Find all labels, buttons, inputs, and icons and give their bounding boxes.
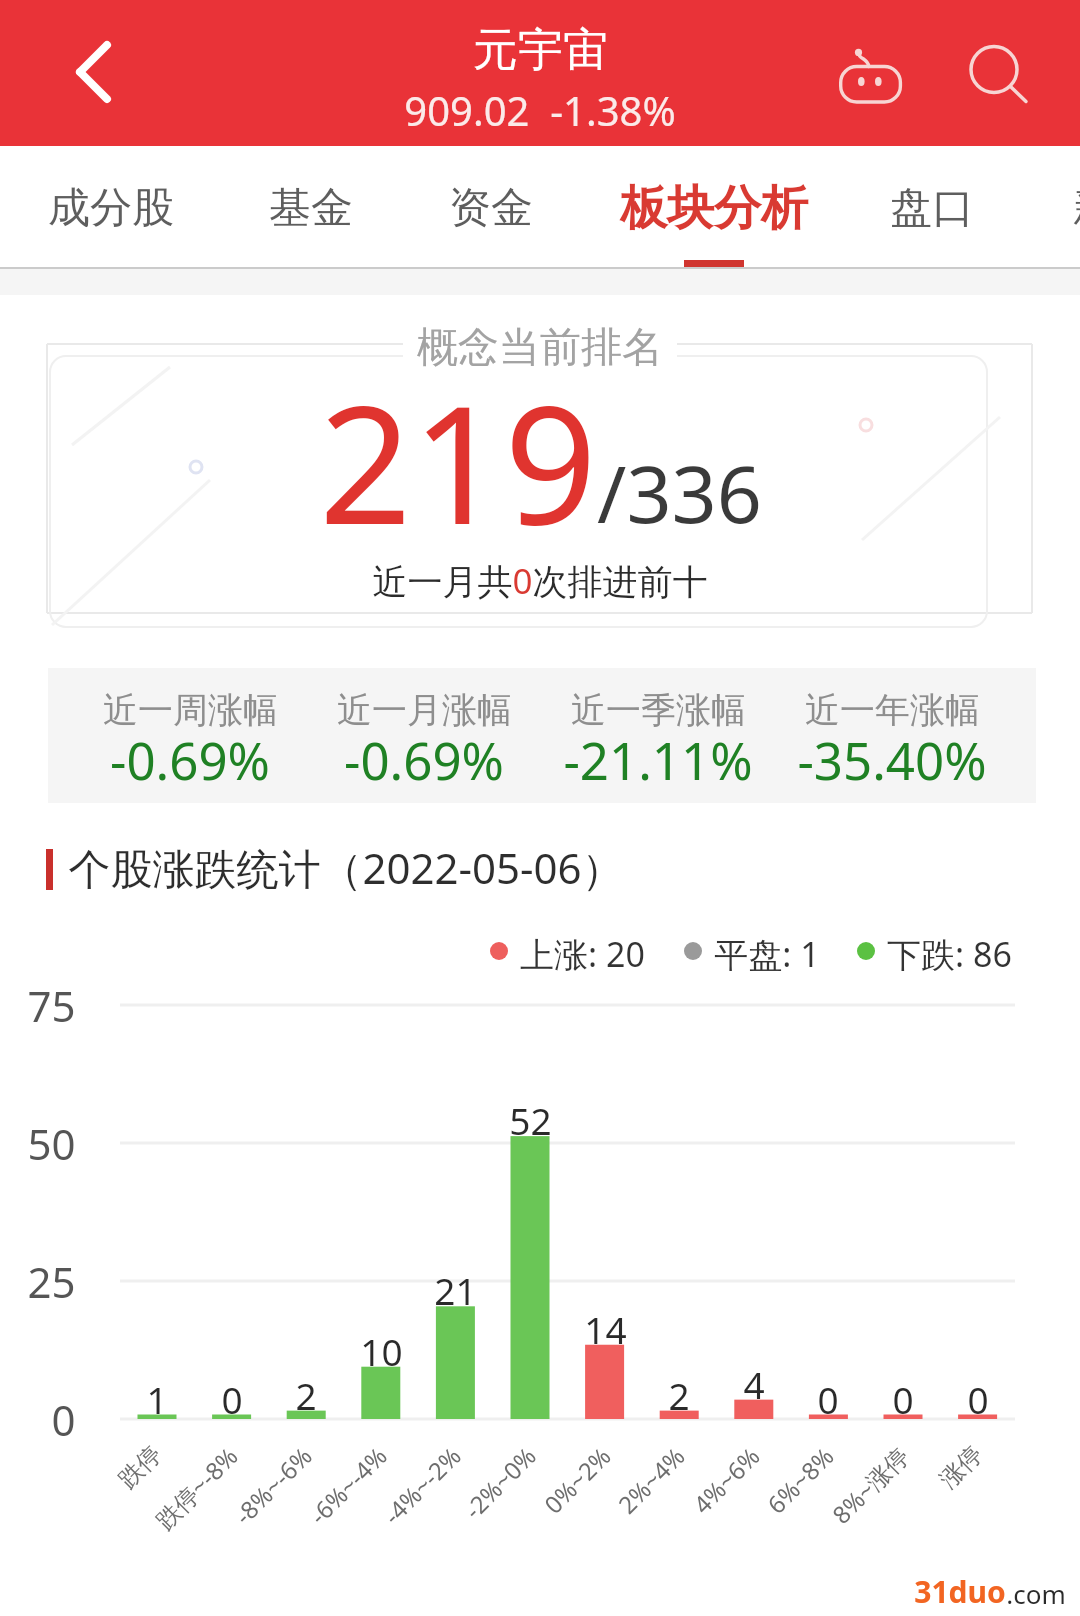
staticText: 31duo	[914, 1571, 1006, 1612]
staticText: 近一月共0次排进前十	[372, 557, 708, 605]
button[interactable]: 上涨: 20	[490, 931, 645, 971]
staticText: 板块分析	[620, 179, 808, 238]
staticText: 近一季涨幅	[571, 688, 746, 732]
staticText: 0	[817, 1374, 839, 1424]
staticText: 跌停	[112, 1439, 168, 1495]
staticText: 盘口	[890, 182, 974, 235]
staticText: 平盘: 1	[714, 931, 820, 971]
staticText: 下跌: 86	[887, 931, 1012, 971]
staticText: 0%~2%	[536, 1439, 616, 1519]
staticText: 2%~4%	[610, 1439, 690, 1519]
button[interactable]: 资金	[421, 150, 561, 267]
button[interactable]: Search	[952, 28, 1036, 112]
staticText: 25	[27, 1253, 76, 1310]
staticText: -8%~-6%	[227, 1439, 317, 1529]
staticText: 概念当前排名	[417, 322, 663, 374]
staticText: 0	[221, 1374, 243, 1424]
staticText: 0	[51, 1391, 76, 1448]
staticText: -0.69%	[344, 725, 504, 794]
staticText: 新	[1073, 182, 1080, 235]
staticText: 近一周涨幅	[103, 688, 278, 732]
staticText: 涨停	[933, 1439, 989, 1495]
staticText: 成分股	[48, 182, 174, 235]
staticText: 4%~6%	[685, 1439, 765, 1519]
staticText: -4%~-2%	[376, 1439, 466, 1529]
button[interactable]: Back	[48, 31, 132, 115]
staticText: 4	[743, 1359, 765, 1409]
staticText: 0	[967, 1374, 989, 1424]
button[interactable]: AI assistant	[828, 31, 912, 115]
staticText: 2	[295, 1370, 317, 1420]
staticText: -21.11%	[563, 725, 753, 794]
staticText: 75	[27, 977, 76, 1034]
staticText: 21	[434, 1265, 477, 1315]
staticText: -6%~-4%	[302, 1439, 392, 1529]
staticText: 2	[668, 1370, 690, 1420]
staticText: 219	[319, 351, 597, 572]
button[interactable]: 近一年涨幅	[762, 668, 1022, 803]
staticText: -35.40%	[797, 725, 987, 794]
button[interactable]: 新	[1054, 150, 1080, 267]
staticText: -0.69%	[110, 725, 270, 794]
staticText: 元宇宙	[473, 22, 608, 79]
staticText: 6%~8%	[759, 1439, 839, 1519]
staticText: 1	[146, 1374, 168, 1424]
staticText: 个股涨跌统计（2022-05-06）	[68, 839, 624, 896]
staticText: 资金	[449, 182, 533, 235]
button[interactable]: 平盘: 1	[684, 931, 820, 971]
staticText: 14	[584, 1304, 627, 1354]
staticText: 跌停~-8%	[148, 1439, 243, 1534]
button[interactable]: 下跌: 86	[857, 931, 1012, 971]
button[interactable]: 近一月涨幅	[294, 668, 554, 803]
button[interactable]: 近一季涨幅	[528, 668, 788, 803]
staticText: 10	[360, 1326, 403, 1376]
staticText: 上涨: 20	[520, 931, 645, 971]
staticText: .com	[1006, 1576, 1066, 1611]
staticText: 0	[892, 1374, 914, 1424]
staticText: 近一月涨幅	[337, 688, 512, 732]
staticText: 基金	[269, 182, 353, 235]
staticText: 909.02 -1.38%	[404, 83, 676, 137]
staticText: 52	[509, 1095, 552, 1145]
button[interactable]: 盘口	[862, 150, 1002, 267]
staticText: 50	[27, 1115, 76, 1172]
button[interactable]: 近一周涨幅	[60, 668, 320, 803]
staticText: 近一年涨幅	[805, 688, 980, 732]
button[interactable]: 基金	[241, 150, 381, 267]
button[interactable]: 板块分析	[599, 150, 829, 267]
staticText: -2%~0%	[456, 1439, 541, 1523]
staticText: /336	[597, 439, 762, 547]
button[interactable]: 成分股	[26, 150, 196, 267]
staticText: 8%~涨停	[824, 1439, 914, 1528]
